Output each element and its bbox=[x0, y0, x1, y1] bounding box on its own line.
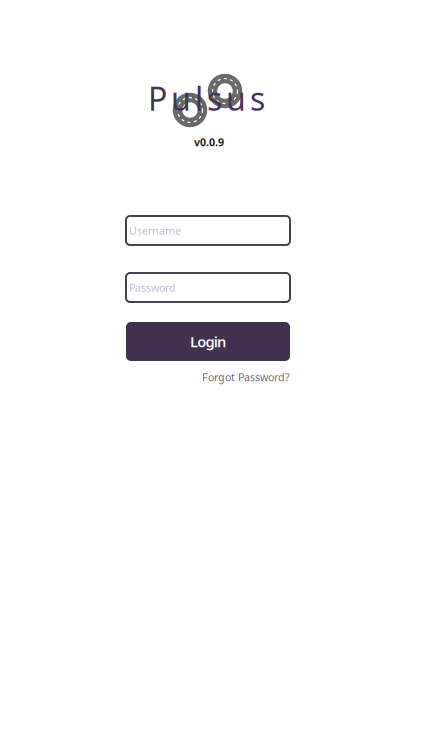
staticText: Forgot Password? bbox=[202, 370, 290, 384]
staticText: Pulsus bbox=[148, 77, 265, 119]
staticText: Password bbox=[129, 280, 176, 295]
staticText: Login bbox=[190, 332, 226, 351]
staticText: Username bbox=[129, 223, 181, 238]
button[interactable]: Forgot Password? bbox=[202, 370, 290, 384]
button[interactable]: Login bbox=[126, 322, 290, 361]
staticText: v0.0.9 bbox=[194, 135, 224, 149]
